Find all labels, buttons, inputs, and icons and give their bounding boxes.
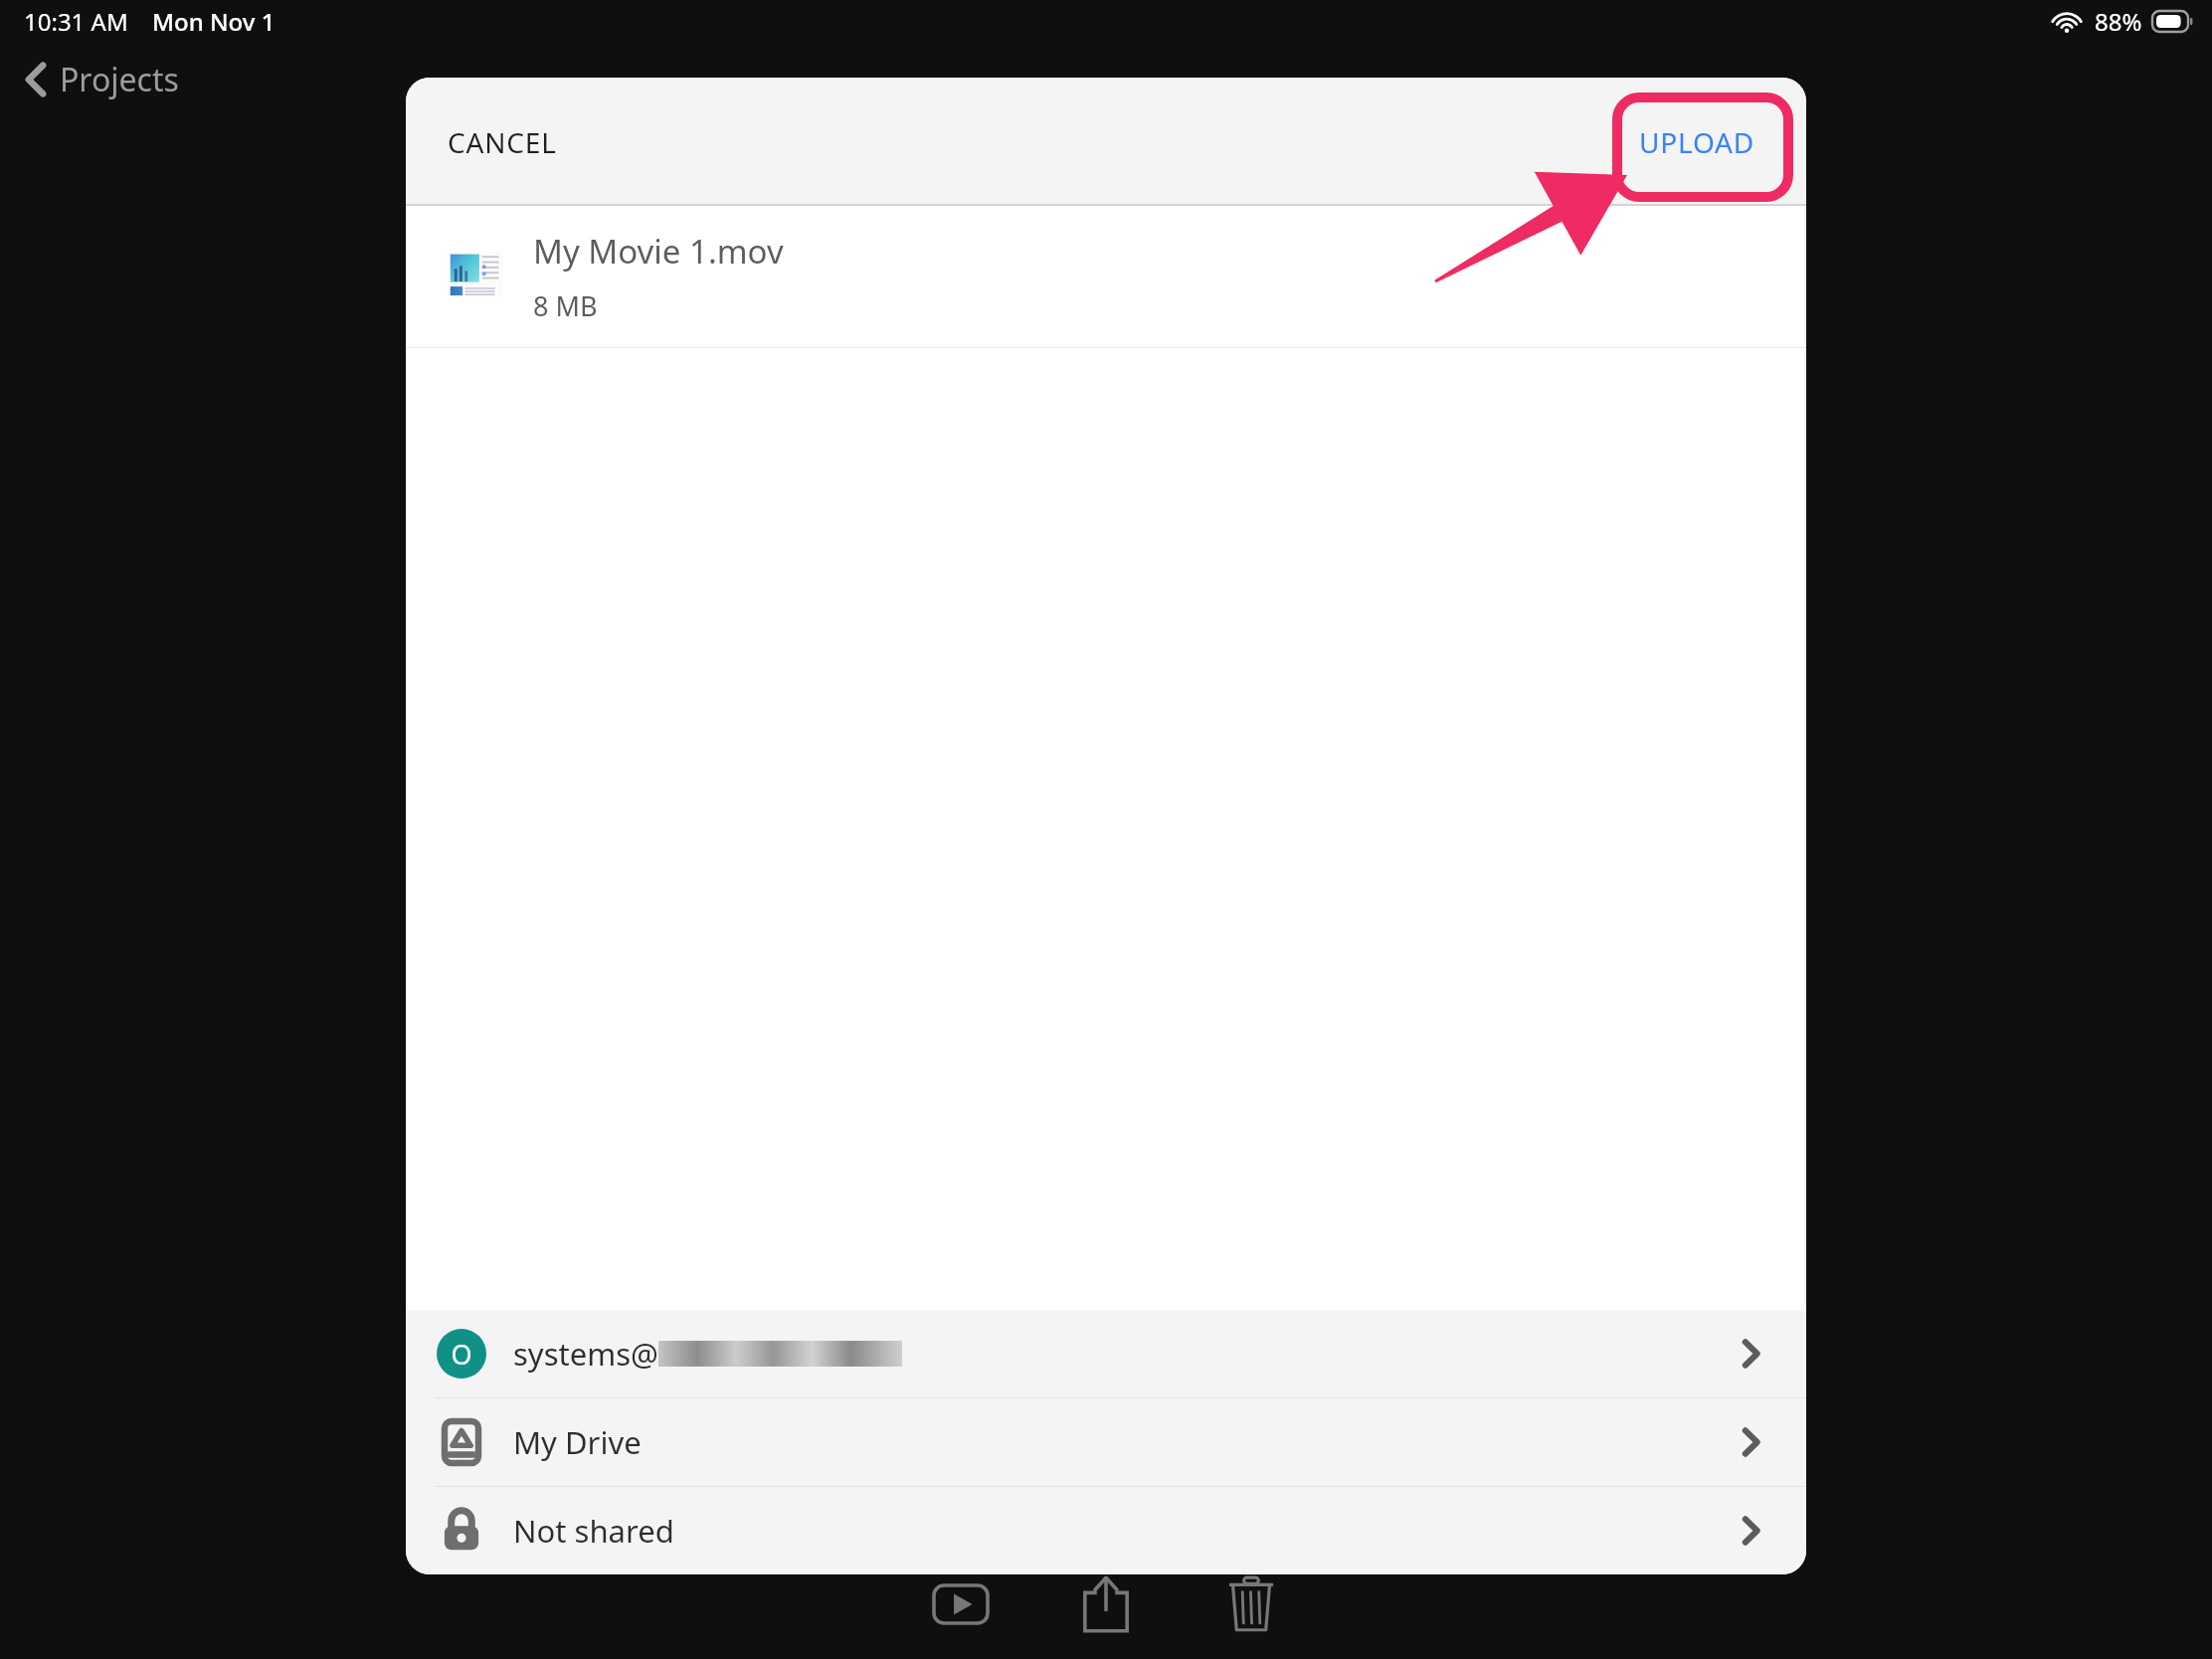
- staticText: Not shared: [513, 1510, 674, 1552]
- button[interactable]: Play: [912, 1556, 1010, 1653]
- button[interactable]: O: [406, 1310, 1806, 1397]
- button[interactable]: Not shared: [406, 1487, 1806, 1574]
- staticText: 8 MB: [533, 287, 598, 324]
- staticText: systems@: [513, 1333, 658, 1375]
- staticText: My Drive: [513, 1421, 642, 1463]
- staticText: My Movie 1.mov: [533, 229, 784, 274]
- staticText: Projects: [60, 58, 179, 101]
- button[interactable]: Share: [1057, 1556, 1155, 1653]
- button[interactable]: My Drive: [406, 1398, 1806, 1486]
- button[interactable]: UPLOAD: [1623, 109, 1770, 175]
- button[interactable]: Delete: [1202, 1556, 1300, 1653]
- staticText: 88%: [2095, 5, 2142, 38]
- staticText: O: [451, 1336, 472, 1373]
- button[interactable]: Projects: [14, 52, 189, 107]
- other: Not shared: [443, 1507, 480, 1555]
- staticText: UPLOAD: [1639, 123, 1754, 161]
- staticText: 10:31 AM: [24, 5, 128, 38]
- other: My Drive: [442, 1418, 481, 1466]
- button[interactable]: CANCEL: [432, 109, 573, 175]
- button[interactable]: My Movie 1.mov: [406, 206, 1806, 347]
- staticText: Mon Nov 1: [152, 5, 276, 38]
- staticText: CANCEL: [448, 123, 557, 161]
